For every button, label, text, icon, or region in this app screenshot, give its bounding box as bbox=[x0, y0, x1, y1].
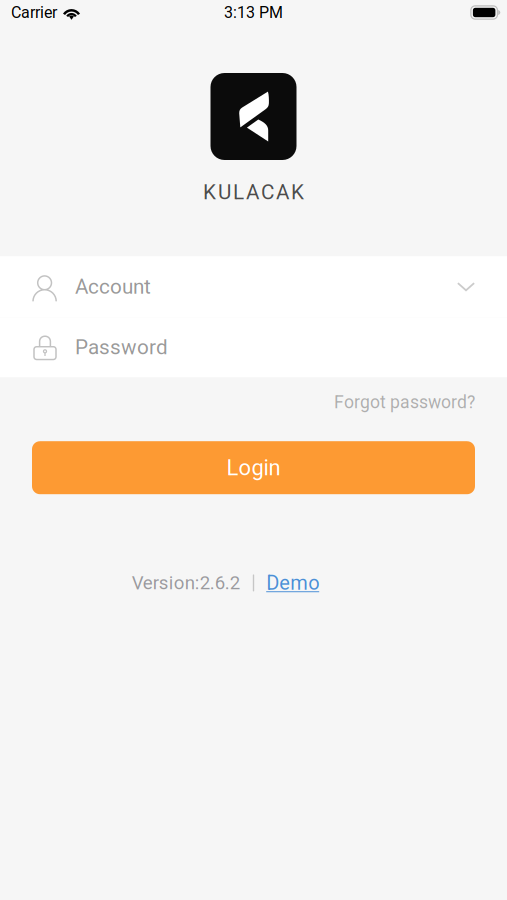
button[interactable]: Forgot password? bbox=[0, 377, 507, 427]
staticText: Login bbox=[226, 455, 280, 481]
staticText: Account bbox=[75, 275, 151, 299]
staticText: KULACAK bbox=[203, 180, 304, 204]
staticText: Carrier bbox=[11, 3, 57, 22]
staticText: Demo bbox=[266, 571, 319, 595]
staticText: Password bbox=[75, 335, 168, 359]
staticText: 3:13 PM bbox=[224, 3, 283, 22]
button[interactable]: Demo bbox=[266, 571, 319, 595]
staticText: Forgot password? bbox=[334, 392, 475, 412]
button[interactable]: Login bbox=[0, 441, 507, 494]
button[interactable]: Password bbox=[0, 317, 507, 377]
button[interactable]: Account bbox=[0, 256, 507, 317]
staticText: Version:2.6.2 bbox=[132, 572, 240, 594]
